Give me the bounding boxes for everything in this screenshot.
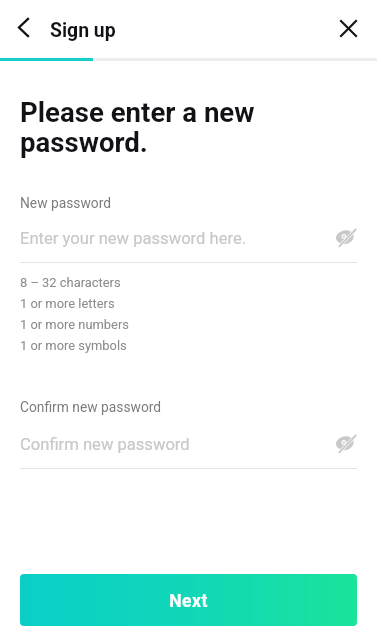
button[interactable]: Close (330, 10, 366, 46)
button[interactable]: Next (20, 574, 357, 626)
staticText: Enter your new password here. (20, 229, 247, 248)
button[interactable]: Show confirm password (333, 431, 359, 457)
button[interactable]: Back (4, 8, 42, 46)
staticText: 1 or more symbols (20, 338, 127, 353)
staticText: Confirm new password (20, 399, 162, 415)
staticText: Next (169, 591, 208, 612)
staticText: 1 or more numbers (20, 317, 129, 332)
staticText: 1 or more letters (20, 296, 115, 311)
button[interactable]: Show new password (333, 225, 359, 251)
staticText: Sign up (50, 19, 116, 42)
staticText: New password (20, 195, 112, 211)
staticText: 8 – 32 characters (20, 275, 121, 290)
staticText: Confirm new password (20, 435, 190, 454)
staticText: Please enter a new password. (20, 96, 255, 159)
